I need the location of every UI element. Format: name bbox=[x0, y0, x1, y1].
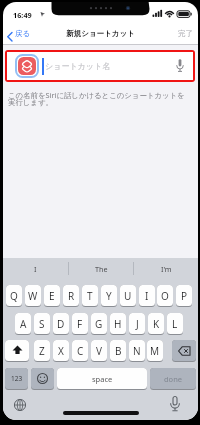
staticText: I bbox=[145, 289, 149, 303]
button[interactable]: O bbox=[157, 285, 173, 306]
button[interactable]: G bbox=[91, 313, 107, 334]
button[interactable]: H bbox=[110, 313, 126, 334]
staticText: W bbox=[28, 289, 38, 303]
button[interactable]: D bbox=[53, 313, 69, 334]
staticText: M bbox=[150, 344, 160, 358]
button[interactable]: E bbox=[44, 285, 60, 306]
staticText: 123 bbox=[11, 374, 23, 383]
button[interactable]: Y bbox=[101, 285, 117, 306]
button[interactable]: F bbox=[72, 313, 88, 334]
button[interactable] bbox=[172, 340, 196, 361]
staticText: V bbox=[96, 344, 102, 358]
staticText: 16:49 bbox=[13, 10, 32, 20]
staticText: 新規ショートカット bbox=[3, 29, 198, 38]
staticText: 戻る bbox=[15, 29, 31, 38]
staticText: R bbox=[68, 289, 75, 303]
staticText: I'm bbox=[161, 264, 172, 274]
button[interactable]: M bbox=[147, 340, 163, 361]
staticText: B bbox=[115, 344, 122, 358]
staticText: The bbox=[95, 264, 108, 274]
staticText: space bbox=[92, 374, 113, 384]
staticText: T bbox=[87, 289, 93, 303]
button[interactable]: J bbox=[129, 313, 145, 334]
staticText: E bbox=[49, 289, 55, 303]
staticText: done bbox=[164, 374, 183, 384]
staticText: J bbox=[136, 317, 139, 331]
button[interactable]: N bbox=[129, 340, 145, 361]
button[interactable]: K bbox=[148, 313, 164, 334]
button[interactable]: Q bbox=[6, 285, 22, 306]
staticText: この名前をSiriに話しかけるとこのショートカットを bbox=[8, 90, 185, 100]
button[interactable]: The bbox=[69, 258, 133, 279]
button[interactable]: V bbox=[91, 340, 107, 361]
button[interactable]: U bbox=[120, 285, 136, 306]
staticText: H bbox=[114, 317, 122, 331]
staticText: Q bbox=[10, 289, 18, 303]
button[interactable]: X bbox=[53, 340, 69, 361]
staticText: Z bbox=[39, 344, 45, 358]
button[interactable] bbox=[5, 340, 29, 361]
button[interactable]: S bbox=[34, 313, 50, 334]
staticText: P bbox=[181, 289, 188, 303]
button[interactable] bbox=[31, 368, 54, 389]
staticText: S bbox=[39, 317, 45, 331]
button[interactable]: W bbox=[25, 285, 41, 306]
staticText: K bbox=[153, 317, 160, 331]
button[interactable]: R bbox=[63, 285, 79, 306]
staticText: L bbox=[172, 317, 178, 331]
button[interactable]: done bbox=[150, 368, 196, 389]
staticText: F bbox=[77, 317, 83, 331]
staticText: Y bbox=[106, 289, 112, 303]
button[interactable]: L bbox=[167, 313, 183, 334]
staticText: C bbox=[77, 344, 84, 358]
staticText: 完了 bbox=[178, 29, 193, 38]
button[interactable]: T bbox=[82, 285, 98, 306]
button[interactable]: B bbox=[110, 340, 126, 361]
staticText: X bbox=[58, 344, 64, 358]
button[interactable]: A bbox=[15, 313, 31, 334]
staticText: G bbox=[95, 317, 103, 331]
button[interactable]: I bbox=[3, 258, 68, 279]
staticText: A bbox=[20, 317, 27, 331]
staticText: D bbox=[57, 317, 65, 331]
button[interactable]: 123 bbox=[5, 368, 28, 389]
staticText: N bbox=[133, 344, 141, 358]
staticText: ショートカット名 bbox=[45, 61, 111, 71]
button[interactable]: P bbox=[176, 285, 192, 306]
button[interactable]: C bbox=[72, 340, 88, 361]
staticText: U bbox=[124, 289, 132, 303]
button[interactable]: I'm bbox=[134, 258, 198, 279]
button[interactable]: Z bbox=[34, 340, 50, 361]
button[interactable]: ショートカット名 bbox=[7, 52, 193, 80]
staticText: I bbox=[34, 264, 37, 274]
staticText: O bbox=[161, 289, 169, 303]
button[interactable]: 戻る bbox=[3, 22, 198, 45]
staticText: 実行します。 bbox=[8, 98, 53, 107]
button[interactable]: I bbox=[139, 285, 155, 306]
button[interactable]: space bbox=[57, 368, 147, 389]
